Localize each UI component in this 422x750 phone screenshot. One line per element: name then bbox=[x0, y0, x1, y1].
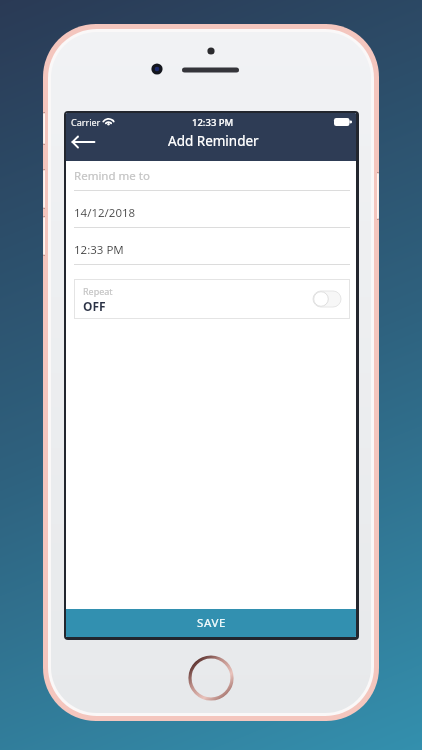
staticText: Add Reminder bbox=[168, 132, 259, 150]
button[interactable]: Back bbox=[66, 128, 100, 156]
staticText: SAVE bbox=[197, 615, 226, 631]
staticText: Carrier bbox=[71, 116, 101, 128]
staticText: OFF bbox=[83, 298, 106, 314]
button[interactable]: Repeat bbox=[74, 279, 350, 319]
button[interactable]: Remind me to bbox=[66, 161, 356, 190]
button[interactable]: 14/12/2018 bbox=[66, 191, 356, 227]
staticText: 14/12/2018 bbox=[74, 205, 136, 221]
button[interactable]: SAVE bbox=[66, 609, 356, 637]
staticText: Remind me to bbox=[74, 168, 150, 184]
button[interactable]: 12:33 PM bbox=[66, 228, 356, 264]
button[interactable]: Repeat toggle bbox=[313, 291, 341, 307]
staticText: Repeat bbox=[83, 285, 113, 297]
staticText: 12:33 PM bbox=[74, 242, 124, 258]
staticText: 12:33 PM bbox=[192, 116, 234, 129]
